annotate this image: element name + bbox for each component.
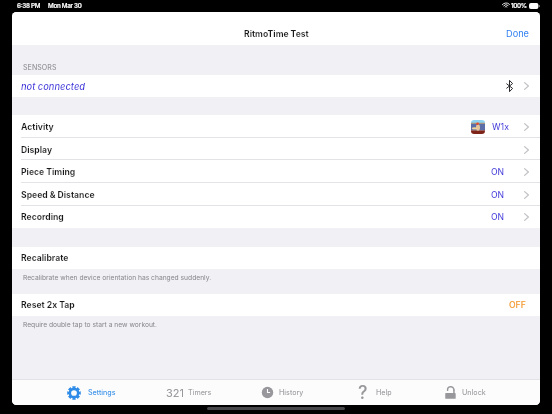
button[interactable]: Done: [495, 21, 540, 46]
staticText: Recalibrate when device orientation has …: [23, 274, 212, 282]
staticText: Recalibrate: [21, 253, 69, 263]
button[interactable]: Unlock: [438, 380, 493, 405]
staticText: Require double tap to start a new workou…: [23, 321, 157, 329]
staticText: ON: [491, 190, 505, 200]
button[interactable]: Reset 2x Tap: [12, 294, 540, 316]
staticText: W1x: [492, 122, 509, 132]
button[interactable]: 321: [159, 380, 219, 405]
staticText: Reset 2x Tap: [21, 300, 75, 310]
staticText: Timers: [188, 388, 212, 397]
staticText: History: [279, 388, 304, 397]
button[interactable]: Recalibrate: [12, 247, 540, 269]
button[interactable]: Settings: [60, 380, 123, 405]
button[interactable]: not connected: [12, 75, 540, 97]
button[interactable]: Display: [12, 138, 540, 161]
staticText: Mon Mar 30: [48, 2, 82, 10]
button[interactable]: Activity: [12, 115, 540, 138]
staticText: 100%: [511, 2, 527, 10]
other: Bluetooth: [506, 80, 513, 92]
staticText: Done: [506, 28, 529, 39]
staticText: Display: [21, 145, 53, 155]
other: Wi-Fi: [503, 3, 509, 8]
button[interactable]: ?: [351, 380, 399, 405]
staticText: OFF: [509, 300, 526, 310]
staticText: 321: [166, 386, 184, 399]
staticText: ON: [491, 212, 505, 222]
button[interactable]: Speed & Distance: [12, 183, 540, 206]
button[interactable]: Recording: [12, 205, 540, 228]
staticText: Recording: [21, 212, 64, 222]
staticText: ON: [491, 167, 505, 177]
staticText: not connected: [21, 81, 86, 92]
staticText: 6:38 PM: [17, 2, 41, 10]
staticText: Help: [376, 388, 392, 397]
staticText: Activity: [21, 122, 54, 132]
staticText: Settings: [88, 388, 116, 397]
button[interactable]: Piece Timing: [12, 160, 540, 183]
staticText: Unlock: [462, 388, 486, 397]
staticText: RitmoTime Test: [244, 29, 309, 39]
button[interactable]: History: [254, 380, 311, 405]
staticText: ?: [358, 382, 368, 404]
staticText: SENSORS: [23, 63, 57, 71]
staticText: Speed & Distance: [21, 190, 95, 200]
staticText: Piece Timing: [21, 167, 76, 177]
